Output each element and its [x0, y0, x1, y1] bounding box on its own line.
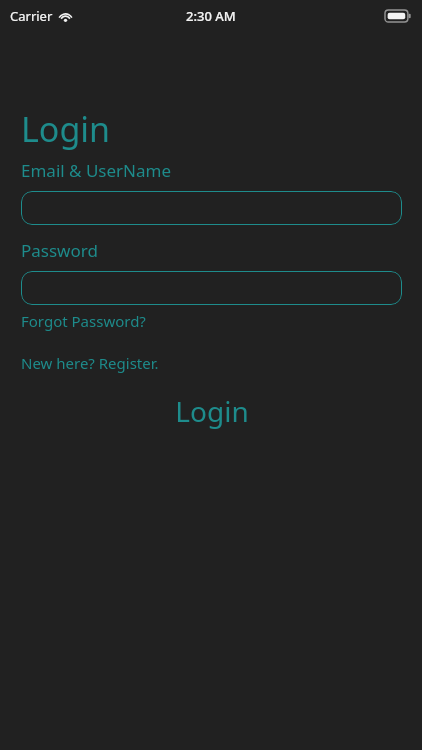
staticText: 2:30 AM	[186, 7, 236, 25]
staticText: Login	[175, 392, 249, 430]
button[interactable]: Email and user name input	[21, 191, 402, 225]
button[interactable]: Login	[21, 389, 402, 433]
staticText: Email & UserName	[21, 159, 172, 182]
staticText: Login	[21, 106, 111, 152]
staticText: New here? Register.	[21, 353, 159, 373]
staticText: Forgot Password?	[21, 311, 146, 331]
staticText: Carrier	[10, 7, 53, 25]
staticText: Password	[21, 239, 98, 262]
button[interactable]: New here? Register.	[21, 353, 159, 373]
button[interactable]: Forgot Password?	[21, 311, 146, 331]
button[interactable]: Password input	[21, 271, 402, 305]
